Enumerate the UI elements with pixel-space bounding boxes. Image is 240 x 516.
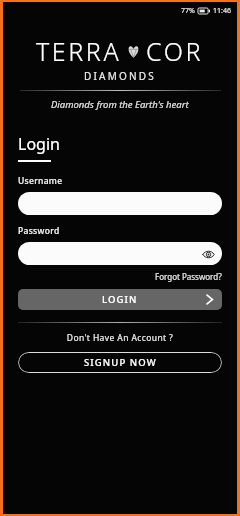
button[interactable]: LOGIN — [18, 289, 222, 310]
staticText: 77% — [181, 6, 195, 16]
staticText: TERRA — [36, 34, 122, 68]
staticText: 11:46 — [213, 6, 231, 16]
button[interactable] — [18, 192, 222, 215]
staticText: LOGIN — [102, 293, 138, 306]
button[interactable]: Show password — [18, 242, 222, 265]
staticText: COR — [146, 34, 204, 68]
button[interactable]: SIGNUP NOW — [18, 352, 222, 373]
staticText: Password — [18, 225, 60, 237]
staticText: Don't Have An Account ? — [18, 332, 222, 344]
staticText: SIGNUP NOW — [84, 356, 157, 369]
staticText: Username — [18, 175, 63, 187]
button[interactable]: Forgot Password? — [155, 271, 222, 282]
staticText: Login — [18, 133, 60, 155]
staticText: DIAMONDS — [84, 69, 156, 83]
staticText: Diamonds from the Earth's heart — [51, 98, 189, 111]
button[interactable]: Show password — [201, 247, 215, 261]
